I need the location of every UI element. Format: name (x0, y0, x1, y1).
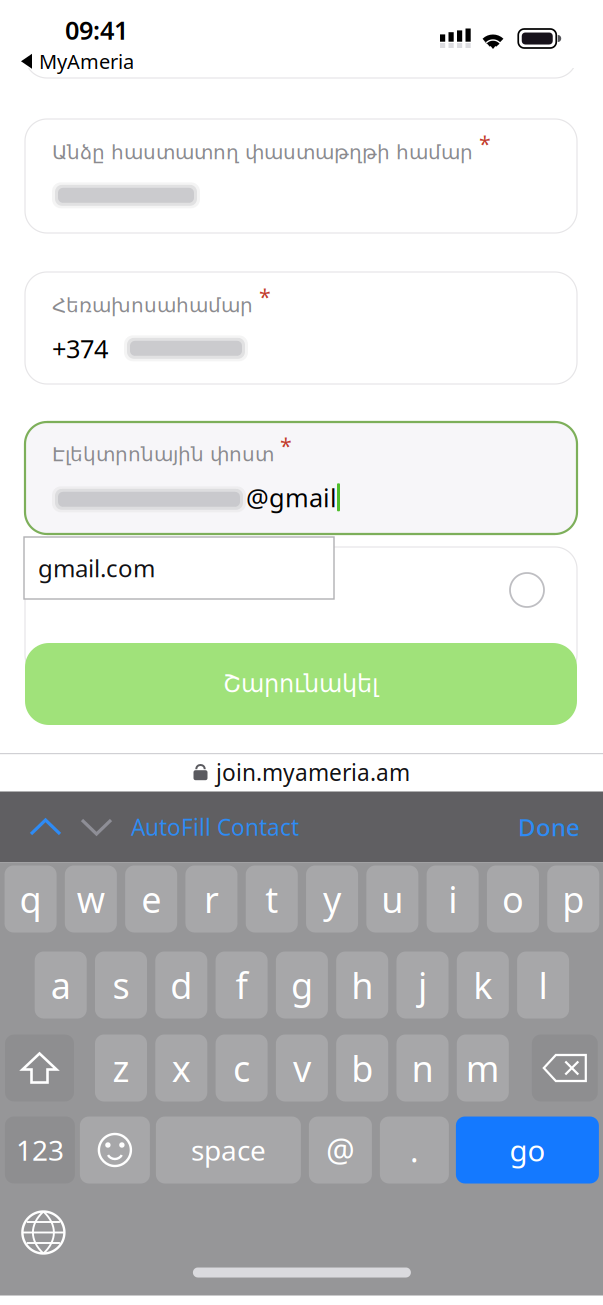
staticText: Անձը հաստատող փաստաթղթի համար (52, 141, 473, 164)
button[interactable]: @ (309, 1116, 372, 1183)
staticText: w (77, 875, 105, 923)
button[interactable]: f (216, 951, 268, 1018)
staticText: Հեռախոսահամար (52, 294, 253, 317)
staticText: * (259, 282, 271, 310)
staticText: y (323, 875, 341, 923)
staticText: a (51, 961, 71, 1009)
staticText: h (351, 961, 373, 1009)
button[interactable]: Delete (532, 1034, 598, 1101)
staticText: 123 (16, 1131, 64, 1169)
staticText: i (448, 875, 457, 923)
button[interactable]: Done (518, 797, 580, 857)
button[interactable]: h (336, 951, 388, 1018)
button[interactable]: z (95, 1034, 147, 1101)
staticText: join.myameria.am (216, 757, 410, 787)
staticText: * (280, 431, 292, 459)
button[interactable]: Next keyboard (16, 1205, 70, 1259)
button[interactable]: Հեռախոսահամար (25, 272, 577, 384)
button[interactable]: d (155, 951, 207, 1018)
staticText: n (411, 1044, 433, 1092)
staticText: g (291, 961, 313, 1009)
button[interactable]: AutoFill Contact (131, 798, 299, 856)
staticText: Done (518, 811, 580, 843)
button[interactable]: j (396, 951, 448, 1018)
staticText: +374 (52, 331, 108, 365)
button[interactable]: go (456, 1116, 599, 1183)
button[interactable]: Previous field (31, 801, 60, 853)
button[interactable]: Emoji (80, 1116, 150, 1183)
staticText: @gmail (246, 480, 337, 514)
button[interactable]: MyAmeria (19, 45, 136, 78)
staticText: t (265, 875, 278, 923)
button[interactable]: m (457, 1034, 509, 1101)
staticText: s (112, 961, 129, 1009)
button[interactable]: w (65, 865, 117, 932)
staticText: . (410, 1129, 419, 1171)
staticText: b (351, 1044, 373, 1092)
button[interactable]: l (517, 951, 569, 1018)
button[interactable]: v (276, 1034, 328, 1101)
button[interactable]: p (547, 865, 599, 932)
staticText: k (473, 961, 492, 1009)
staticText: d (170, 961, 192, 1009)
button[interactable]: s (95, 951, 147, 1018)
button[interactable]: o (487, 865, 539, 932)
staticText: go (509, 1130, 545, 1169)
button[interactable]: n (396, 1034, 448, 1101)
staticText: * (479, 129, 491, 157)
staticText: Շարունակել (223, 670, 379, 698)
button[interactable]: r (185, 865, 237, 932)
staticText: z (112, 1044, 129, 1092)
button[interactable]: i (427, 865, 479, 932)
button[interactable]: e (125, 865, 177, 932)
staticText: l (539, 961, 548, 1009)
staticText: p (562, 875, 584, 923)
staticText: r (204, 875, 219, 923)
staticText: q (19, 875, 41, 923)
staticText: @ (326, 1129, 355, 1171)
staticText: space (191, 1131, 266, 1169)
button[interactable]: Էլեկտրոնային փոստ (25, 422, 577, 534)
staticText: x (172, 1044, 191, 1092)
staticText: f (236, 961, 248, 1009)
button[interactable]: u (366, 865, 418, 932)
button[interactable]: Շարունակել (25, 643, 577, 725)
button[interactable]: c (216, 1034, 268, 1101)
staticText: c (233, 1044, 250, 1092)
staticText: AutoFill Contact (131, 812, 299, 842)
staticText: gmail.com (38, 552, 155, 584)
staticText: o (502, 875, 524, 923)
button[interactable]: x (155, 1034, 207, 1101)
button[interactable]: y (306, 865, 358, 932)
button[interactable]: Shift (5, 1034, 74, 1101)
button[interactable]: gmail.com (24, 537, 334, 599)
staticText: e (141, 875, 161, 923)
button[interactable]: a (35, 951, 87, 1018)
button[interactable]: Next field (82, 801, 111, 853)
staticText: j (418, 961, 427, 1009)
staticText: m (466, 1044, 500, 1092)
staticText: 09:41 (65, 13, 128, 47)
button[interactable]: b (336, 1034, 388, 1101)
staticText: Էլեկտրոնային փոստ (52, 443, 274, 466)
button[interactable]: q (4, 865, 56, 932)
staticText: v (293, 1044, 311, 1092)
button[interactable]: t (246, 865, 298, 932)
staticText: MyAmeria (39, 48, 134, 75)
button[interactable]: g (276, 951, 328, 1018)
button[interactable]: Անձը հաստատող փաստաթղթի համար (25, 119, 577, 233)
button[interactable]: 123 (5, 1116, 75, 1183)
staticText: u (381, 875, 403, 923)
button[interactable]: k (457, 951, 509, 1018)
button[interactable]: . (380, 1116, 449, 1183)
button[interactable]: space (156, 1116, 301, 1183)
